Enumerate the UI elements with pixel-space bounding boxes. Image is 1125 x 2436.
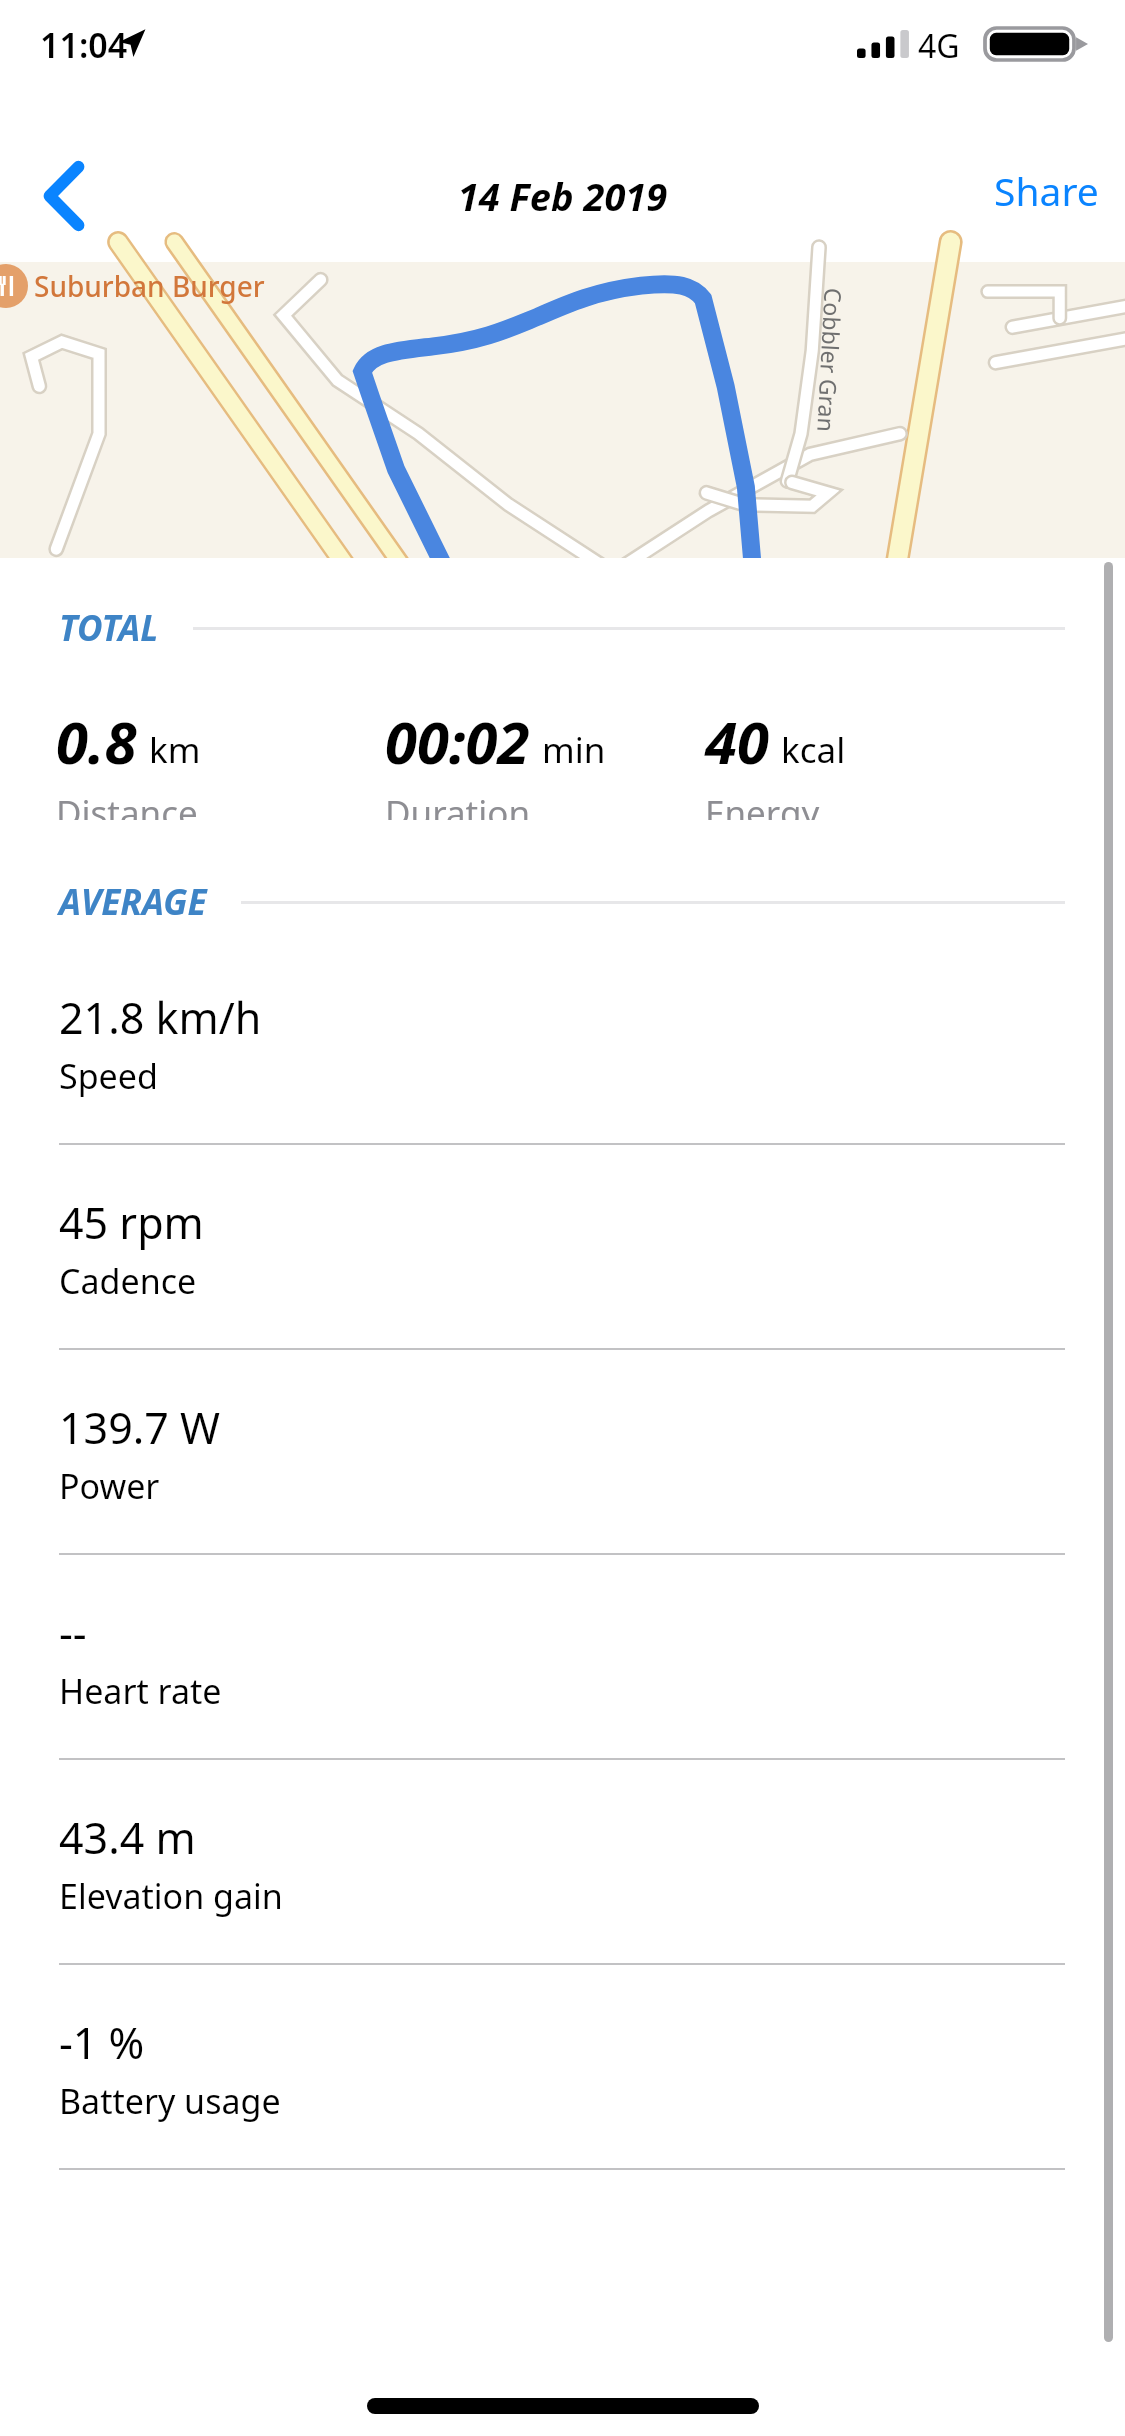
staticText: 40 <box>705 702 769 781</box>
button[interactable]: 45 rpm <box>0 1193 1125 1398</box>
staticText: Battery usage <box>59 2078 281 2124</box>
staticText: Duration <box>385 789 531 820</box>
staticText: kcal <box>781 726 846 774</box>
staticText: 11:04 <box>40 22 128 68</box>
staticText: Cobbler Gran <box>811 287 850 434</box>
staticText: Cadence <box>59 1258 197 1304</box>
staticText: Power <box>59 1463 160 1509</box>
staticText: 14 Feb 2019 <box>0 170 1125 222</box>
staticText: 45 rpm <box>59 1193 204 1252</box>
staticText: Speed <box>59 1053 158 1099</box>
button[interactable]: Back <box>14 146 114 246</box>
staticText: Distance <box>56 789 198 820</box>
staticText: Share <box>994 164 1099 217</box>
staticText: Suburban Burger <box>34 267 265 305</box>
staticText: Energy <box>705 789 820 820</box>
staticText: km <box>149 726 201 774</box>
button[interactable]: Share <box>980 152 1113 229</box>
staticText: Heart rate <box>59 1668 222 1714</box>
staticText: 4G <box>918 24 960 68</box>
staticText: min <box>542 726 606 774</box>
staticText: 43.4 m <box>59 1808 196 1867</box>
staticText: 00:02 <box>385 702 530 781</box>
button[interactable]: 21.8 km/h <box>0 988 1125 1193</box>
button[interactable]: 139.7 W <box>0 1398 1125 1603</box>
button[interactable]: -1 % <box>0 2013 1125 2218</box>
staticText: -- <box>59 1603 87 1662</box>
staticText: Elevation gain <box>59 1873 283 1919</box>
staticText: 0.8 <box>56 702 137 781</box>
staticText: AVERAGE <box>59 878 207 926</box>
button[interactable]: -- <box>0 1603 1125 1808</box>
staticText: TOTAL <box>59 604 159 652</box>
button[interactable]: 43.4 m <box>0 1808 1125 2013</box>
staticText: 21.8 km/h <box>59 988 262 1047</box>
staticText: 139.7 W <box>59 1398 221 1457</box>
staticText: -1 % <box>59 2013 145 2072</box>
